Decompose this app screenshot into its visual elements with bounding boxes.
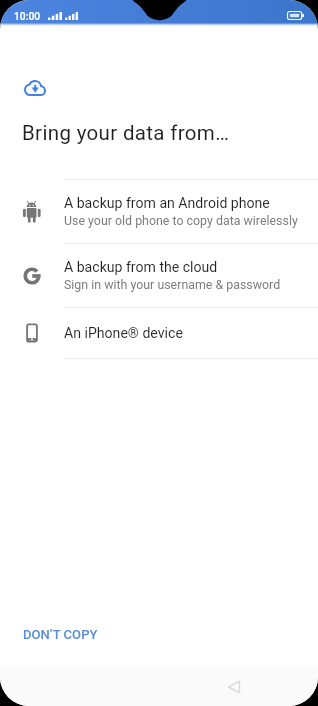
staticText: An iPhone® device <box>64 325 183 342</box>
button[interactable]: A backup from the cloud <box>0 244 318 307</box>
staticText: 10:00 <box>14 10 41 22</box>
staticText: A backup from an Android phone <box>64 195 270 212</box>
button[interactable]: An iPhone® device <box>0 308 318 358</box>
staticText: Sign in with your username & password <box>64 277 281 292</box>
staticText: Use your old phone to copy data wireless… <box>64 213 298 228</box>
button[interactable]: A backup from an Android phone <box>0 180 318 243</box>
staticText: DON’T COPY <box>23 627 98 642</box>
staticText: A backup from the cloud <box>64 259 218 276</box>
button[interactable]: DON’T COPY <box>11 619 110 650</box>
staticText: Bring your data from… <box>22 121 230 145</box>
button[interactable]: Back <box>216 669 252 705</box>
